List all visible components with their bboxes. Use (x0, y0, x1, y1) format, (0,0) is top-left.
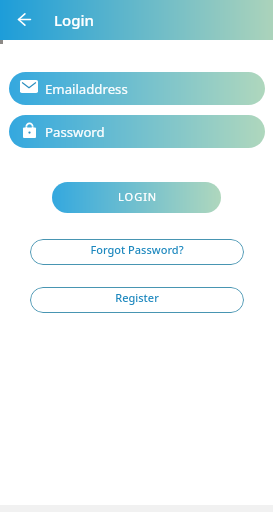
staticText: Password (45, 123, 105, 141)
staticText: Emailaddress (45, 80, 128, 98)
button[interactable]: Forgot Password? (30, 239, 244, 265)
staticText: Register (115, 290, 159, 305)
button[interactable]: Emailaddress (9, 72, 265, 105)
button[interactable]: LOGIN (52, 182, 221, 213)
staticText: LOGIN (118, 189, 158, 204)
button[interactable]: Register (30, 287, 244, 313)
staticText: Login (54, 10, 94, 30)
staticText: Forgot Password? (90, 242, 184, 257)
button[interactable]: Password (9, 115, 265, 148)
button[interactable]: Back (11, 7, 38, 34)
